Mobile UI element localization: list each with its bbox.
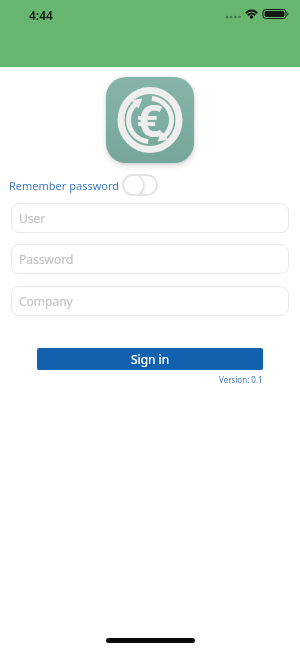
button[interactable]: Company (11, 286, 289, 316)
staticText: Sign in (131, 351, 170, 367)
staticText: Password (19, 251, 74, 267)
staticText: Version: 0.1 (219, 374, 263, 385)
button[interactable]: User (11, 203, 289, 233)
button[interactable] (122, 174, 158, 196)
staticText: € (137, 90, 163, 150)
staticText: User (19, 210, 46, 226)
staticText: Remember password (9, 178, 120, 193)
staticText: Company (19, 293, 73, 309)
button[interactable]: Password (11, 244, 289, 274)
button[interactable]: Sign in (37, 348, 263, 370)
staticText: 4:44 (29, 7, 53, 21)
